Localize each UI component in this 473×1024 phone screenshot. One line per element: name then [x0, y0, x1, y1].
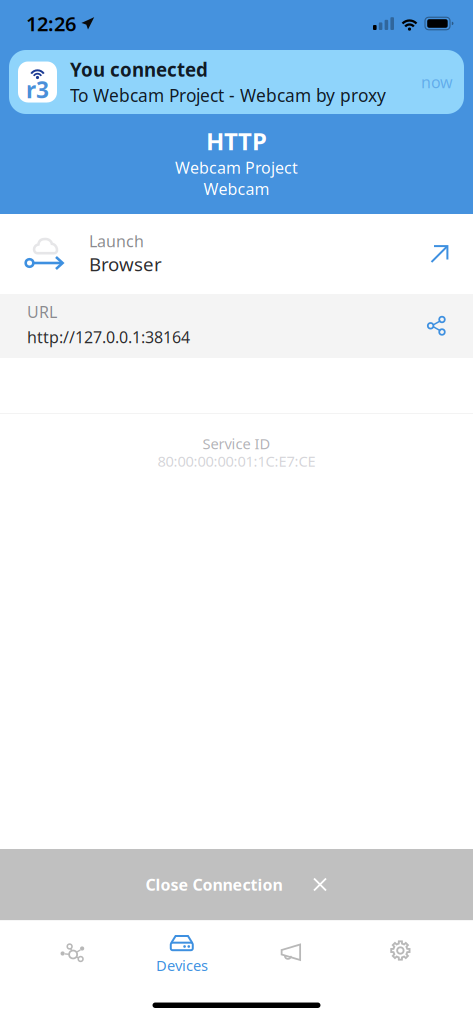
staticText: Launch	[89, 230, 144, 252]
staticText: http://127.0.0.1:38164	[27, 326, 190, 348]
staticText: Webcam Project	[175, 157, 298, 178]
staticText: 80:00:00:00:01:1C:E7:CE	[157, 451, 315, 471]
staticText: Close Connection	[145, 874, 282, 895]
staticText: Browser	[89, 252, 162, 276]
button[interactable]: Announcements	[236, 920, 346, 989]
staticText: Service ID	[202, 434, 270, 453]
button[interactable]: r3	[9, 50, 464, 114]
button[interactable]: URL	[0, 294, 473, 358]
staticText: You connected	[70, 57, 208, 82]
staticText: Devices	[156, 955, 208, 975]
button[interactable]: Close Connection	[0, 849, 473, 920]
staticText: URL	[27, 301, 57, 322]
button[interactable]: Settings	[346, 920, 455, 989]
button[interactable]: Devices	[127, 920, 236, 989]
staticText: 12:26	[26, 10, 76, 37]
staticText: Webcam	[203, 178, 269, 199]
staticText: To Webcam Project - Webcam by proxy	[70, 84, 386, 107]
staticText: HTTP	[206, 125, 267, 157]
staticText: r3	[26, 74, 49, 104]
staticText: now	[421, 71, 453, 93]
button[interactable]: Network	[18, 920, 127, 989]
button[interactable]: Launch	[0, 214, 473, 294]
